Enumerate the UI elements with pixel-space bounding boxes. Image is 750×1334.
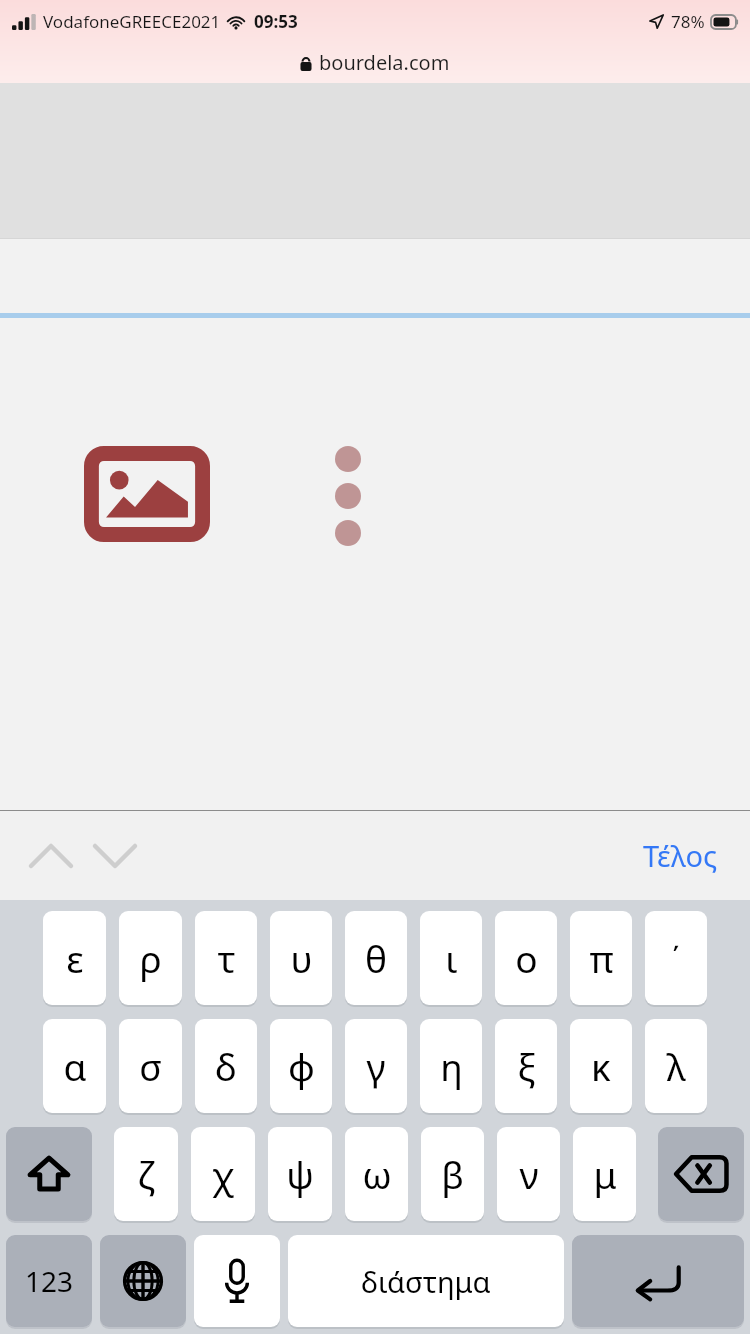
button[interactable]: Numbers [6, 1235, 92, 1327]
staticText: φ [288, 1041, 315, 1091]
staticText: διάστημα [361, 1262, 491, 1301]
staticText: α [63, 1041, 87, 1091]
staticText: ρ [139, 933, 162, 983]
button[interactable]: φ [270, 1019, 332, 1113]
button[interactable]: Backspace [658, 1127, 744, 1221]
staticText: VodafoneGREECE2021 [43, 10, 221, 33]
staticText: ΄ [672, 938, 680, 979]
staticText: η [440, 1041, 463, 1091]
staticText: 09:53 [254, 10, 298, 33]
button[interactable]: ω [345, 1127, 408, 1221]
button[interactable]: bourdela.com [0, 42, 750, 83]
staticText: υ [290, 933, 313, 983]
staticText: ψ [286, 1149, 314, 1199]
button[interactable]: δ [195, 1019, 257, 1113]
staticText: β [441, 1149, 464, 1199]
button[interactable]: μ [573, 1127, 636, 1221]
staticText: 123 [25, 1262, 74, 1300]
button[interactable]: θ [345, 911, 407, 1005]
button[interactable]: ΄ [645, 911, 707, 1005]
staticText: λ [666, 1041, 686, 1091]
button[interactable]: ρ [119, 911, 182, 1005]
button[interactable]: σ [119, 1019, 182, 1113]
button[interactable]: Change keyboard [100, 1235, 186, 1327]
button[interactable]: Return [572, 1235, 744, 1327]
button[interactable]: ι [420, 911, 482, 1005]
staticText: τ [217, 933, 236, 983]
button[interactable]: η [420, 1019, 482, 1113]
button[interactable]: ψ [268, 1127, 332, 1221]
staticText: ν [519, 1149, 539, 1199]
button[interactable]: χ [191, 1127, 255, 1221]
button[interactable]: α [43, 1019, 106, 1113]
button[interactable]: Τέλος [633, 828, 728, 883]
button[interactable]: π [570, 911, 632, 1005]
button[interactable]: Previous field [20, 825, 82, 887]
staticText: ω [362, 1149, 392, 1199]
button[interactable]: ξ [495, 1019, 557, 1113]
button[interactable]: More options [335, 446, 361, 546]
staticText: σ [139, 1041, 162, 1091]
button[interactable]: ε [43, 911, 106, 1005]
button[interactable]: β [421, 1127, 484, 1221]
staticText: ι [445, 933, 458, 983]
button[interactable]: διάστημα [288, 1235, 564, 1327]
button[interactable]: ζ [114, 1127, 178, 1221]
staticText: δ [215, 1041, 237, 1091]
staticText: γ [366, 1041, 386, 1091]
button[interactable]: ν [497, 1127, 560, 1221]
button[interactable]: ο [495, 911, 557, 1005]
button[interactable]: Shift [6, 1127, 92, 1221]
staticText: ε [66, 933, 84, 983]
button[interactable]: λ [645, 1019, 707, 1113]
staticText: 78% [671, 10, 705, 33]
staticText: μ [593, 1149, 617, 1199]
staticText: ξ [517, 1041, 536, 1091]
button[interactable]: τ [195, 911, 257, 1005]
button[interactable]: υ [270, 911, 332, 1005]
staticText: Τέλος [643, 836, 718, 875]
staticText: ο [515, 933, 538, 983]
button[interactable]: Next field [84, 825, 146, 887]
staticText: κ [591, 1041, 611, 1091]
button[interactable]: Dictation [194, 1235, 280, 1327]
button[interactable]: γ [345, 1019, 407, 1113]
staticText: bourdela.com [319, 49, 450, 76]
staticText: χ [212, 1149, 234, 1199]
staticText: ζ [137, 1149, 155, 1199]
staticText: π [589, 933, 614, 983]
button[interactable]: κ [570, 1019, 632, 1113]
staticText: θ [365, 933, 387, 983]
other: Broken image placeholder [84, 446, 210, 542]
